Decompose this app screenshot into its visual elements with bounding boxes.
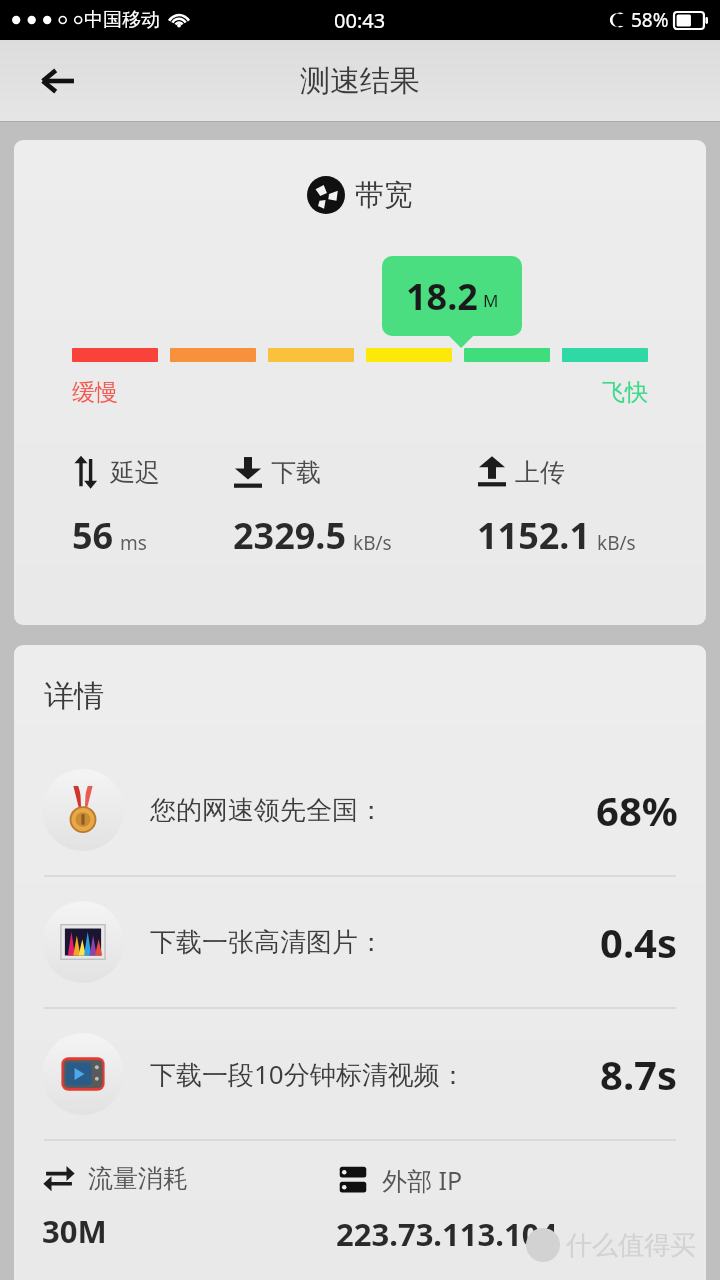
staticText: 中国移动: [84, 8, 160, 32]
staticText: 缓慢: [72, 378, 118, 407]
staticText: 您的网速领先全国：: [150, 794, 384, 827]
staticText: 1152.1: [477, 511, 591, 560]
staticText: 00:43: [334, 7, 386, 34]
staticText: kB/s: [353, 530, 392, 556]
staticText: 18.2: [406, 272, 478, 321]
staticText: 带宽: [355, 177, 413, 214]
staticText: ms: [120, 530, 147, 556]
staticText: 外部 IP: [382, 1163, 463, 1197]
staticText: 测速结果: [300, 62, 420, 100]
staticText: kB/s: [597, 530, 636, 556]
staticText: 详情: [44, 677, 104, 715]
button[interactable]: 下载一张高清图片：: [14, 877, 706, 1007]
staticText: 下载: [271, 457, 321, 488]
staticText: 0.4s: [600, 915, 678, 969]
staticText: 下载一段10分钟标清视频：: [150, 1056, 466, 1092]
staticText: 30M: [42, 1210, 107, 1252]
staticText: 68%: [596, 783, 678, 837]
staticText: 飞快: [602, 378, 648, 407]
staticText: M: [483, 289, 499, 312]
staticText: 流量消耗: [88, 1163, 188, 1194]
staticText: 56: [72, 511, 114, 560]
staticText: 什么值得买: [566, 1229, 696, 1262]
staticText: 延迟: [110, 457, 160, 488]
button[interactable]: 下载一段10分钟标清视频：: [14, 1009, 706, 1139]
staticText: 2329.5: [233, 511, 347, 560]
button[interactable]: 您的网速领先全国：: [14, 745, 706, 875]
staticText: 223.73.113.104: [336, 1213, 558, 1255]
button[interactable]: Back: [22, 45, 94, 117]
staticText: 上传: [515, 457, 565, 488]
staticText: 8.7s: [600, 1047, 678, 1101]
staticText: 下载一张高清图片：: [150, 926, 384, 959]
staticText: 58%: [631, 7, 669, 33]
